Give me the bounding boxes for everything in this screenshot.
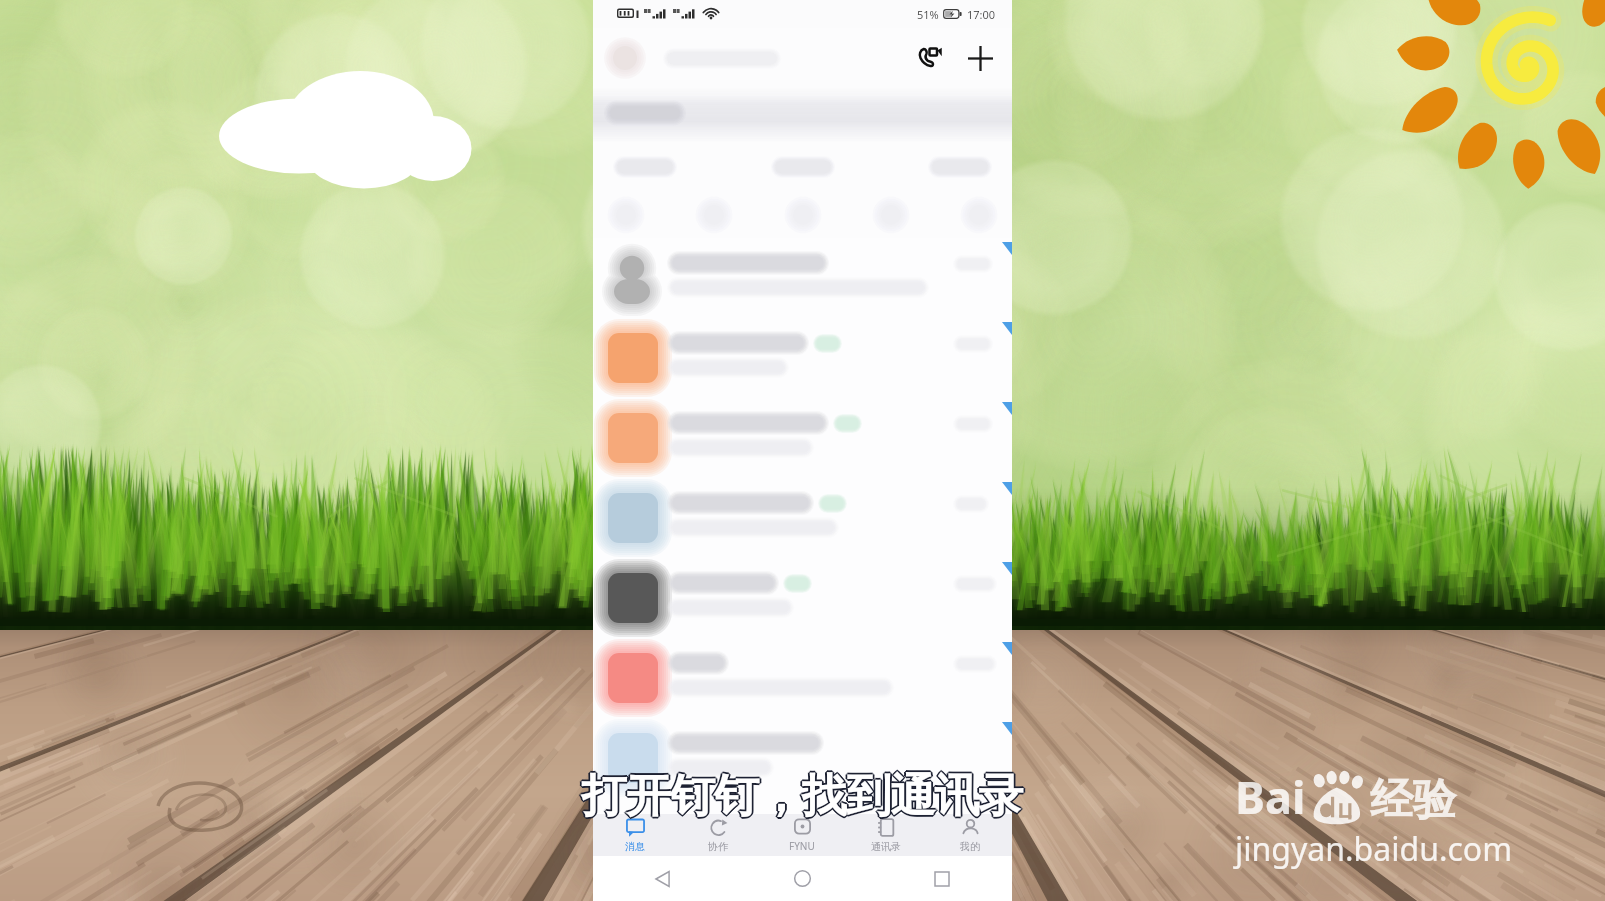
staticText: 打开钉钉，找到通讯录: [582, 769, 1023, 826]
staticText: 通讯录: [871, 840, 901, 853]
button[interactable]: [593, 718, 1012, 798]
button[interactable]: Docs: [786, 198, 820, 232]
button[interactable]: 协作: [676, 814, 760, 856]
button[interactable]: Unread: [769, 154, 837, 180]
staticText: 打开钉钉，找到通讯录: [582, 768, 1023, 825]
staticText: jingyan.baidu.com: [1235, 827, 1513, 871]
button[interactable]: [593, 478, 1012, 558]
button[interactable]: FYNU: [760, 814, 844, 856]
button[interactable]: [593, 398, 1012, 478]
button[interactable]: All: [611, 154, 679, 180]
staticText: 打开钉钉，找到通讯录: [583, 769, 1024, 826]
button[interactable]: Home: [732, 856, 872, 901]
button[interactable]: 我的: [928, 814, 1012, 856]
staticText: 打开钉钉，找到通讯录: [582, 770, 1023, 827]
staticText: 打开钉钉，找到通讯录: [581, 769, 1022, 826]
button[interactable]: More: [962, 198, 996, 232]
staticText: 打开钉钉，找到通讯录: [581, 768, 1022, 825]
button[interactable]: Ding: [609, 198, 643, 232]
button[interactable]: [593, 318, 1012, 398]
staticText: 打开钉钉，找到通讯录: [583, 768, 1024, 825]
button[interactable]: 通讯录: [844, 814, 928, 856]
button[interactable]: Recents: [872, 856, 1012, 901]
staticText: 我的: [960, 840, 980, 853]
button[interactable]: Approval: [874, 198, 908, 232]
staticText: Bai: [1235, 766, 1306, 827]
button[interactable]: [593, 558, 1012, 638]
staticText: 打开钉钉，找到通讯录: [582, 768, 1023, 825]
button[interactable]: Profile: [605, 38, 645, 78]
staticText: FYNU: [789, 839, 815, 853]
staticText: 打开钉钉，找到通讯录: [582, 766, 1023, 823]
button[interactable]: Video call: [912, 40, 948, 76]
staticText: 打开钉钉，找到通讯录: [582, 767, 1023, 824]
button[interactable]: [593, 238, 1012, 318]
button[interactable]: Search: [593, 88, 1012, 142]
button[interactable]: Groups: [926, 154, 994, 180]
staticText: 51%: [917, 7, 939, 22]
button[interactable]: [593, 638, 1012, 718]
button[interactable]: Add: [962, 40, 998, 76]
staticText: 消息: [625, 840, 645, 853]
button[interactable]: Back: [593, 856, 732, 901]
staticText: 协作: [708, 840, 728, 853]
button[interactable]: Meeting: [697, 198, 731, 232]
staticText: 经验: [1370, 773, 1456, 827]
staticText: 打开钉钉，找到通讯录: [580, 768, 1021, 825]
staticText: 17:00: [967, 7, 996, 22]
button[interactable]: 消息: [593, 814, 676, 856]
staticText: 打开钉钉，找到通讯录: [584, 768, 1025, 825]
staticText: 打开钉钉，找到通讯录: [583, 767, 1024, 824]
button[interactable]: Title: [661, 46, 783, 71]
staticText: 打开钉钉，找到通讯录: [581, 767, 1022, 824]
